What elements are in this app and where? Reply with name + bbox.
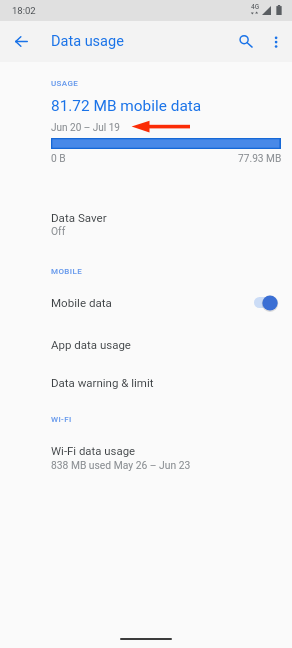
button[interactable]: More options bbox=[260, 25, 292, 57]
button[interactable]: Search bbox=[229, 25, 261, 57]
staticText: 838 MB used May 26 – Jun 23 bbox=[51, 459, 191, 471]
staticText: Jun 20 – Jul 19 bbox=[51, 122, 120, 134]
staticText: Wi-Fi data usage bbox=[51, 444, 136, 457]
staticText: 4G bbox=[251, 3, 260, 11]
staticText: Mobile data bbox=[51, 296, 112, 310]
button[interactable]: Wi-Fi data usage bbox=[0, 434, 292, 478]
staticText: 0 B bbox=[51, 153, 66, 165]
staticText: Off bbox=[51, 225, 66, 237]
staticText: 77.93 MB bbox=[238, 153, 282, 165]
staticText: WI-FI bbox=[51, 415, 72, 424]
button[interactable]: Navigate up bbox=[4, 25, 36, 57]
button[interactable]: Data warning & limit bbox=[0, 364, 292, 400]
button[interactable]: App data usage bbox=[0, 326, 292, 362]
staticText: Data Saver bbox=[51, 211, 107, 225]
staticText: MOBILE bbox=[51, 267, 83, 276]
staticText: App data usage bbox=[51, 338, 131, 351]
staticText: USAGE bbox=[51, 79, 79, 88]
button[interactable]: Data Saver bbox=[0, 200, 292, 246]
staticText: Data usage bbox=[51, 33, 124, 50]
staticText: 81.72 MB mobile data bbox=[51, 97, 202, 115]
button[interactable]: Mobile data bbox=[0, 288, 292, 320]
staticText: 18:02 bbox=[12, 5, 36, 16]
staticText: Data warning & limit bbox=[51, 376, 154, 389]
